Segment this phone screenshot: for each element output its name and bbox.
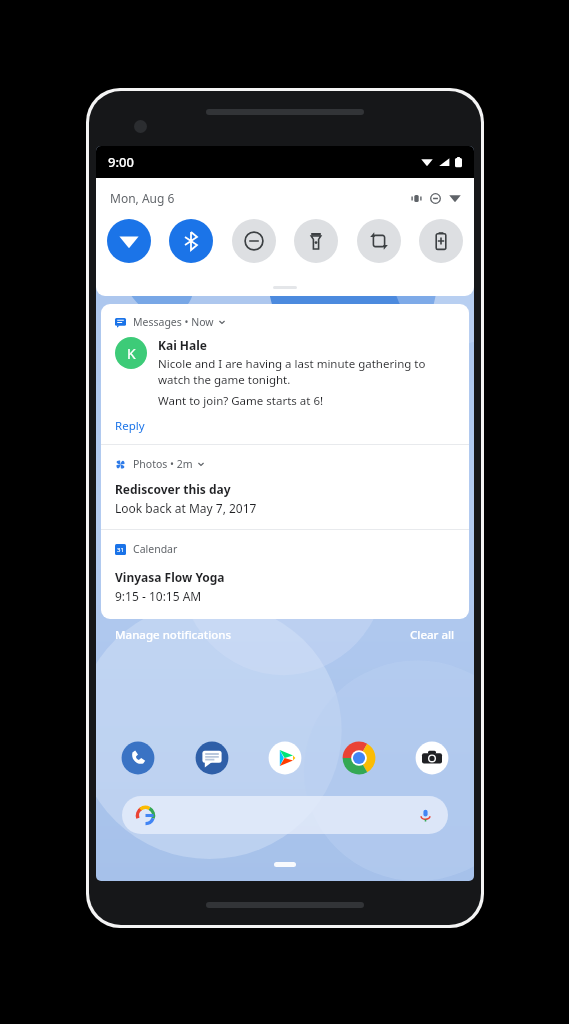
staticText: K [127,344,136,363]
staticText: Messages • Now [133,315,214,329]
staticText: Photos • 2m [133,457,193,471]
button[interactable]: Flashlight [294,219,338,263]
button[interactable]: Messages • Now [101,304,469,444]
button[interactable]: Battery saver [419,219,463,263]
button[interactable]: Camera [412,738,452,778]
button[interactable]: Bluetooth [169,219,213,263]
button[interactable]: Reply [115,418,145,434]
button[interactable]: Chrome [339,738,379,778]
button[interactable]: Manage notifications [115,627,232,643]
button[interactable]: Do not disturb [232,219,276,263]
staticText: Nicole and I are having a last minute ga… [158,356,455,387]
staticText: Want to join? Game starts at 6! [158,393,324,409]
staticText: Kai Hale [158,337,207,353]
staticText: Calendar [133,542,178,556]
staticText: Look back at May 7, 2017 [115,500,257,516]
staticText: 9:00 [108,153,134,171]
button[interactable]: Wi-Fi [107,219,151,263]
button[interactable] [122,796,448,834]
staticText: Mon, Aug 6 [110,190,175,206]
staticText: 9:15 - 10:15 AM [115,588,202,604]
button[interactable]: Auto-rotate [357,219,401,263]
button[interactable]: 31 [101,530,469,619]
button[interactable]: Messages [192,738,232,778]
staticText: Rediscover this day [115,481,231,497]
button[interactable]: Phone [118,738,158,778]
button[interactable]: Clear all [410,627,455,643]
staticText: 31 [117,546,124,554]
button[interactable]: Play Store [265,738,305,778]
staticText: Vinyasa Flow Yoga [115,569,225,585]
button[interactable]: Photos • 2m [101,445,469,529]
